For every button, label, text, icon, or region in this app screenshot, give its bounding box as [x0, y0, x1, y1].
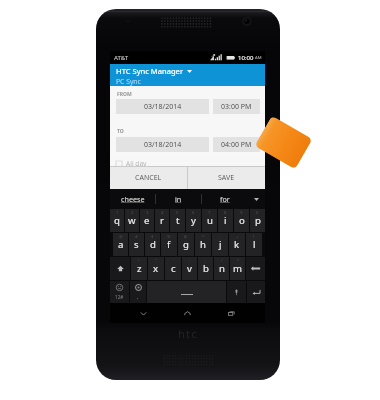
staticText: FROM [117, 91, 132, 98]
staticText: c [171, 262, 176, 275]
staticText: p [255, 214, 261, 227]
button[interactable]: ! [131, 257, 147, 280]
staticText: 7 [208, 210, 211, 216]
button[interactable]: All day [110, 152, 265, 166]
button[interactable]: : [182, 257, 197, 280]
staticText: g [183, 238, 189, 251]
button[interactable]: HTC Sync Manager [110, 64, 265, 86]
staticText: z [137, 262, 142, 275]
button[interactable]: 2 [125, 209, 139, 232]
button[interactable]: $ [145, 233, 160, 256]
button[interactable]: More suggestions [247, 189, 265, 209]
button[interactable]: SAVE [188, 167, 265, 189]
button[interactable]: cheese [110, 189, 155, 209]
staticText: b [203, 262, 209, 275]
button[interactable]: Backspace [246, 257, 265, 280]
button[interactable]: 7 [202, 209, 217, 232]
button[interactable]: 4 [155, 209, 169, 232]
button[interactable]: 0 [250, 209, 265, 232]
button[interactable]: 1 [110, 209, 124, 232]
staticText: + [236, 234, 239, 240]
staticText: k [234, 238, 240, 251]
staticText: % [167, 234, 171, 240]
staticText: SAVE [218, 173, 235, 183]
staticText: s [134, 238, 139, 251]
button[interactable]: 5 [170, 209, 185, 232]
staticText: 6 [192, 210, 195, 216]
staticText: 4 [161, 210, 164, 216]
staticText: v [187, 262, 192, 275]
button[interactable]: 6 [186, 209, 201, 232]
button[interactable]: * [195, 233, 211, 256]
button[interactable]: Enter [247, 281, 265, 303]
button[interactable]: Shift [110, 257, 130, 280]
staticText: for [220, 194, 230, 204]
staticText: q [114, 214, 120, 227]
staticText: l [253, 238, 256, 251]
button[interactable]: / [214, 257, 229, 280]
staticText: 8 [224, 210, 227, 216]
staticText: AT&T [114, 54, 129, 62]
button[interactable]: Back [122, 303, 165, 323]
button[interactable]: Space [147, 281, 226, 303]
button[interactable]: 03/18/2014 [116, 137, 209, 152]
staticText: HTC Sync Manager [116, 66, 184, 76]
staticText: 10:00 [238, 54, 254, 62]
staticText: * [202, 234, 205, 240]
button[interactable]: in [156, 189, 201, 209]
staticText: t [176, 214, 180, 227]
staticText: 03/18/2014 [144, 102, 182, 112]
button[interactable]: ; [198, 257, 213, 280]
staticText: h [200, 238, 206, 251]
staticText: o [239, 214, 245, 227]
button[interactable]: # [129, 233, 144, 256]
staticText: @ [119, 234, 123, 240]
button[interactable]: 03:00 PM [213, 99, 260, 114]
staticText: / [221, 258, 223, 264]
button[interactable]: - [212, 233, 228, 256]
button[interactable]: Voice input [227, 281, 246, 303]
button[interactable]: & [178, 233, 194, 256]
button[interactable]: ' [165, 257, 181, 280]
button[interactable]: " [148, 257, 164, 280]
staticText: : [189, 258, 191, 264]
staticText: 2 [131, 210, 134, 216]
staticText: & [184, 234, 188, 240]
button[interactable]: 04:00 PM [213, 137, 260, 152]
staticText: , [137, 293, 139, 301]
staticText: TO [117, 128, 124, 135]
button[interactable]: 8 [218, 209, 233, 232]
button[interactable]: + [229, 233, 245, 256]
staticText: htc [178, 326, 199, 341]
button[interactable]: Symbols [110, 281, 129, 303]
staticText: e [144, 214, 150, 227]
staticText: 0 [256, 210, 259, 216]
staticText: 1 [116, 210, 119, 216]
staticText: 12# [115, 294, 124, 300]
button[interactable]: for [202, 189, 247, 209]
button[interactable]: 3 [140, 209, 154, 232]
staticText: d [150, 238, 156, 251]
staticText: 03:00 PM [221, 102, 252, 112]
staticText: " [155, 258, 157, 264]
staticText: # [135, 234, 138, 240]
button[interactable]: ( [246, 233, 262, 256]
staticText: 9 [240, 210, 243, 216]
staticText: in [175, 194, 182, 204]
staticText: ? [237, 258, 239, 264]
button[interactable]: Home [165, 303, 209, 323]
button[interactable]: CANCEL [110, 167, 187, 189]
button[interactable]: 9 [234, 209, 249, 232]
button[interactable]: Recents [209, 303, 253, 323]
staticText: AM [255, 55, 262, 61]
staticText: m [233, 262, 242, 275]
staticText: x [153, 262, 159, 275]
staticText: ' [173, 258, 174, 264]
button[interactable]: @ [113, 233, 128, 256]
button[interactable]: ? [230, 257, 245, 280]
staticText: r [160, 214, 164, 227]
button[interactable]: % [161, 233, 177, 256]
button[interactable]: Comma [130, 281, 146, 303]
button[interactable]: 03/18/2014 [116, 99, 209, 114]
